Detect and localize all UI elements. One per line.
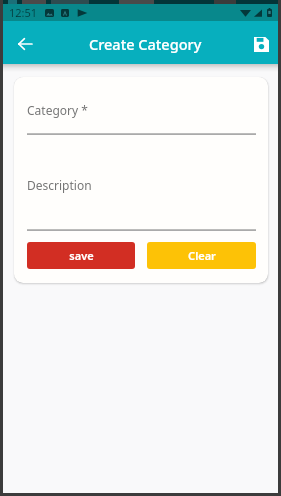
staticText: Clear bbox=[188, 248, 216, 263]
button[interactable]: save bbox=[27, 242, 135, 269]
button[interactable]: Back bbox=[8, 27, 42, 61]
staticText: Create Category bbox=[89, 34, 202, 54]
staticText: Description bbox=[27, 177, 92, 193]
staticText: save bbox=[69, 248, 94, 263]
button[interactable]: Clear bbox=[147, 242, 256, 269]
staticText: 12:51 bbox=[9, 5, 38, 20]
staticText: Category * bbox=[27, 102, 88, 118]
button[interactable]: Save bbox=[244, 27, 278, 61]
